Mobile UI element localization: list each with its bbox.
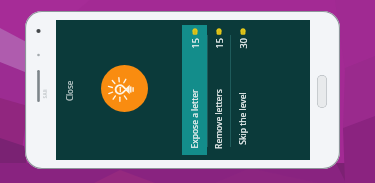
staticText: Skip the level bbox=[237, 92, 249, 145]
button[interactable]: Hint bbox=[101, 65, 148, 112]
button[interactable]: 15 bbox=[207, 25, 230, 155]
button[interactable]: 30 bbox=[230, 25, 255, 155]
staticText: Close bbox=[64, 80, 75, 101]
button[interactable]: 15 bbox=[182, 25, 207, 155]
staticText: 30 bbox=[236, 37, 248, 48]
staticText: Remove letters bbox=[213, 89, 225, 149]
button[interactable]: Home bbox=[317, 75, 327, 108]
staticText: 15 bbox=[212, 37, 224, 48]
staticText: SAMSUNG bbox=[41, 89, 47, 98]
button[interactable]: Close bbox=[58, 64, 81, 116]
staticText: Expose a letter bbox=[189, 89, 201, 149]
staticText: 15 bbox=[188, 37, 200, 48]
